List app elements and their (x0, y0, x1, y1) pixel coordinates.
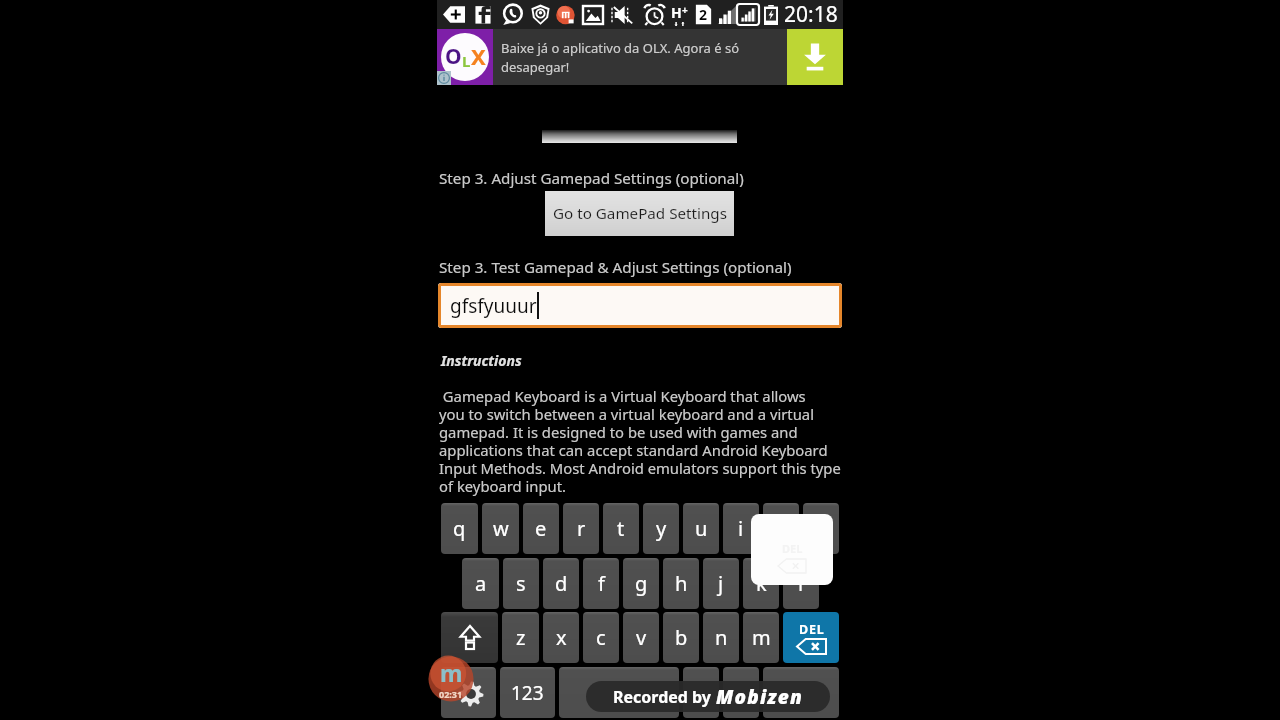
staticText: m (440, 657, 463, 688)
staticText: X (471, 41, 486, 71)
button[interactable]: r (563, 503, 599, 554)
staticText: Gamepad Keyboard is a Virtual Keyboard t… (439, 386, 841, 497)
staticText: Recorded by (613, 686, 716, 708)
button[interactable]: n (703, 612, 739, 663)
button[interactable]: u (683, 503, 719, 554)
button[interactable]: q (441, 503, 478, 554)
staticText: Step 3. Test Gamepad & Adjust Settings (… (439, 257, 792, 278)
staticText: i (738, 515, 744, 542)
button[interactable]: Download (787, 29, 843, 85)
button[interactable]: Numbers and symbols (500, 667, 555, 718)
button[interactable]: gfsfyuuur (438, 283, 842, 328)
staticText: m (752, 624, 771, 651)
button[interactable]: w (482, 503, 519, 554)
button[interactable]: Shift (441, 612, 498, 663)
button[interactable]: t (603, 503, 639, 554)
button[interactable]: Go to GamePad Settings (545, 191, 734, 236)
staticText: x (556, 624, 567, 651)
button[interactable]: y (643, 503, 679, 554)
staticText: r (577, 515, 586, 542)
button[interactable]: a (462, 558, 499, 609)
button[interactable]: i (723, 503, 759, 554)
button[interactable]: p (803, 503, 839, 554)
button[interactable]: s (503, 558, 539, 609)
staticText: + (682, 3, 688, 17)
button[interactable]: Baixe já o aplicativo da OLX. Agora é só… (493, 29, 787, 85)
button[interactable]: j (703, 558, 739, 609)
button[interactable]: Space (559, 667, 679, 718)
staticText: f (598, 570, 605, 597)
button[interactable]: e (523, 503, 559, 554)
button[interactable]: k (743, 558, 779, 609)
button[interactable]: z (502, 612, 539, 663)
staticText: Instructions (441, 351, 522, 370)
staticText: s (516, 570, 526, 597)
staticText: y (656, 515, 667, 542)
staticText: gfsfyuuur (450, 293, 537, 319)
staticText: q (453, 515, 466, 542)
staticText: b (675, 624, 688, 651)
staticText: l (798, 570, 804, 597)
button[interactable]: Comma (683, 667, 719, 718)
staticText: H (671, 3, 682, 22)
button[interactable]: x (543, 612, 579, 663)
button[interactable]: Settings (441, 667, 496, 718)
button[interactable]: Delete (783, 612, 839, 663)
staticText: g (635, 570, 648, 597)
staticText: 02:31 (439, 688, 463, 700)
staticText: k (756, 570, 767, 597)
staticText: c (596, 624, 606, 651)
staticText: 20:18 (784, 0, 838, 29)
staticText: L (462, 51, 471, 71)
staticText: Go to GamePad Settings (553, 203, 727, 224)
staticText: Baixe já o aplicativo da OLX. Agora é só… (501, 39, 781, 76)
staticText: u (695, 515, 708, 542)
staticText: d (555, 570, 568, 597)
button[interactable]: v (623, 612, 659, 663)
button[interactable]: o (763, 503, 799, 554)
staticText: a (475, 570, 487, 597)
staticText: v (636, 624, 647, 651)
staticText: h (675, 570, 688, 597)
staticText: 123 (511, 680, 544, 706)
staticText: j (718, 570, 724, 597)
button[interactable]: g (623, 558, 659, 609)
staticText: Step 3. Adjust Gamepad Settings (optiona… (439, 168, 744, 189)
button[interactable]: m (743, 612, 779, 663)
staticText: w (493, 515, 509, 542)
button[interactable]: b (663, 612, 699, 663)
staticText: Mobizen (716, 684, 803, 710)
staticText: O (445, 42, 462, 71)
staticText: z (516, 624, 526, 651)
staticText: DEL (782, 541, 803, 556)
button[interactable]: l (783, 558, 819, 609)
staticText: e (535, 515, 547, 542)
button[interactable]: c (583, 612, 619, 663)
button[interactable]: Period (723, 667, 759, 718)
button[interactable]: Enter (763, 667, 839, 718)
button[interactable]: f (583, 558, 619, 609)
button[interactable]: h (663, 558, 699, 609)
staticText: 2 (699, 5, 708, 24)
staticText: DEL (799, 621, 825, 638)
staticText: t (617, 515, 625, 542)
staticText: n (715, 624, 728, 651)
button[interactable]: d (543, 558, 579, 609)
